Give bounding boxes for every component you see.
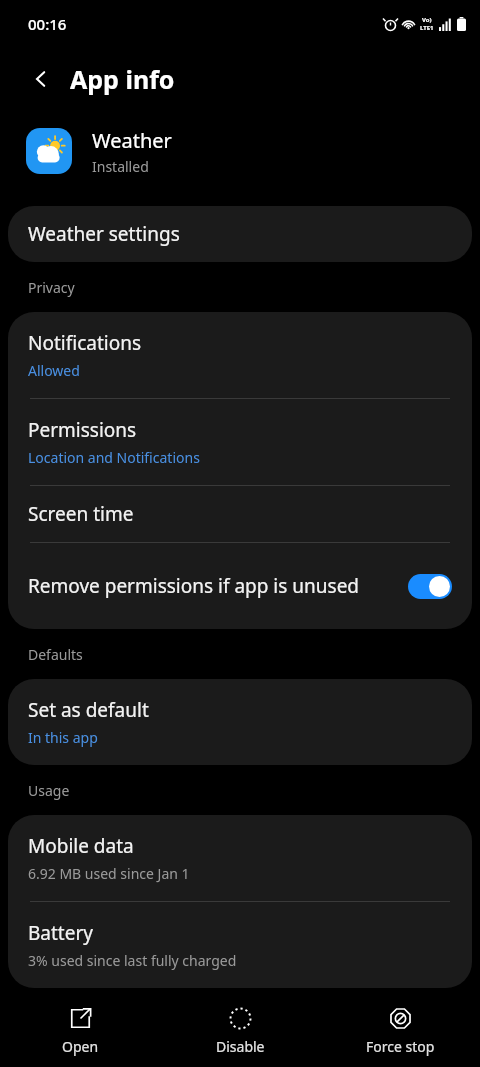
button[interactable]: Permissions	[8, 399, 472, 485]
button[interactable]: Remove permissions if app is unused	[8, 543, 472, 629]
staticText: Battery	[28, 920, 93, 946]
staticText: Allowed	[28, 361, 80, 380]
button[interactable]: Open	[0, 999, 160, 1064]
staticText: 00:16	[28, 14, 67, 34]
staticText: Weather settings	[28, 221, 180, 247]
staticText: App info	[70, 62, 175, 96]
staticText: Set as default	[28, 697, 149, 723]
button[interactable]: Force stop	[320, 999, 480, 1064]
staticText: Disable	[216, 1037, 265, 1056]
staticText: Location and Notifications	[28, 448, 200, 467]
button[interactable]: Weather settings	[8, 206, 472, 262]
staticText: 6.92 MB used since Jan 1	[28, 864, 190, 883]
staticText: In this app	[28, 728, 98, 747]
button[interactable]: Disable	[160, 999, 320, 1064]
staticText: Remove permissions if app is unused	[28, 573, 380, 599]
button[interactable]: Battery	[8, 902, 472, 988]
button[interactable]: Mobile data	[8, 815, 472, 901]
staticText: Usage	[28, 781, 70, 800]
button[interactable]: Screen time	[8, 486, 472, 542]
staticText: Weather	[92, 127, 172, 154]
staticText: Mobile data	[28, 833, 134, 859]
staticText: Permissions	[28, 417, 137, 443]
other: Remove permissions toggle	[408, 574, 452, 599]
staticText: LTE1	[420, 24, 434, 32]
staticText: Screen time	[28, 501, 134, 527]
staticText: Defaults	[28, 645, 83, 664]
button[interactable]: Set as default	[8, 679, 472, 765]
button[interactable]: Notifications	[8, 312, 472, 398]
staticText: 3% used since last fully charged	[28, 951, 237, 970]
staticText: Installed	[92, 157, 149, 176]
staticText: Force stop	[366, 1037, 435, 1056]
staticText: Vo)	[422, 16, 432, 24]
staticText: Open	[62, 1037, 99, 1056]
staticText: Privacy	[28, 278, 75, 297]
staticText: Notifications	[28, 330, 142, 356]
button[interactable]: Back	[24, 62, 58, 96]
